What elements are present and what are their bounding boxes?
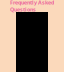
staticText: Frequently Asked Questions: [10, 0, 54, 13]
